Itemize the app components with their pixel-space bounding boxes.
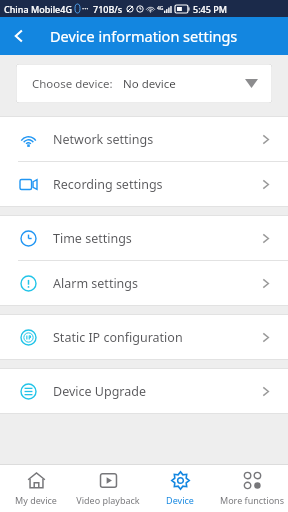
button[interactable]: More functions <box>216 465 288 512</box>
staticText: 5:45 PM <box>193 3 227 15</box>
button[interactable]: Time settings <box>0 216 288 260</box>
staticText: China Mobile4G <box>4 3 72 15</box>
staticText: No device <box>123 76 176 92</box>
staticText: Device <box>166 494 194 506</box>
button[interactable]: Device <box>144 465 216 512</box>
staticText: Network settings <box>53 131 154 148</box>
staticText: My device <box>15 494 57 506</box>
button[interactable]: Recording settings <box>0 162 288 206</box>
staticText: Device information settings <box>50 26 238 46</box>
button[interactable]: My device <box>0 465 72 512</box>
staticText: Recording settings <box>53 176 163 193</box>
button[interactable]: Device Upgrade <box>0 369 288 413</box>
button[interactable]: Network settings <box>0 117 288 161</box>
button[interactable]: Alarm settings <box>0 261 288 305</box>
staticText: Choose device: <box>32 76 113 92</box>
staticText: Video playback <box>76 494 140 506</box>
staticText: Time settings <box>53 230 132 247</box>
button[interactable]: Back <box>0 17 38 55</box>
staticText: More functions <box>220 494 284 506</box>
button[interactable]: Static IP configuration <box>0 315 288 359</box>
staticText: ··· <box>82 3 89 14</box>
button[interactable]: Choose device: <box>16 64 272 103</box>
staticText: 4G <box>157 5 164 12</box>
staticText: Alarm settings <box>53 275 139 292</box>
staticText: 710B/s <box>93 3 123 15</box>
button[interactable]: Video playback <box>72 465 144 512</box>
staticText: Device Upgrade <box>53 383 146 400</box>
staticText: Static IP configuration <box>53 329 183 346</box>
